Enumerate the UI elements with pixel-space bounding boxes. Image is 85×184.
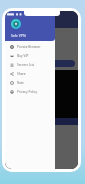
button[interactable]: Servers List (5, 60, 55, 69)
button[interactable]: Buy VIP (5, 51, 55, 60)
button[interactable]: Share (5, 69, 55, 78)
button[interactable]: Privacy Policy (5, 87, 55, 96)
button[interactable]: Private Browser (5, 42, 55, 51)
staticText: Buy VIP (17, 54, 29, 58)
staticText: Rate (17, 81, 24, 85)
button[interactable] (8, 60, 75, 67)
staticText: Servers List (17, 63, 35, 67)
staticText: TAP TO CONNECT (5, 45, 78, 49)
button[interactable]: Rate (5, 78, 55, 87)
staticText: Private Browser (17, 45, 41, 49)
staticText: Privacy Policy (17, 90, 38, 94)
staticText: Safe VPN (11, 33, 26, 38)
staticText: Share (17, 72, 26, 76)
